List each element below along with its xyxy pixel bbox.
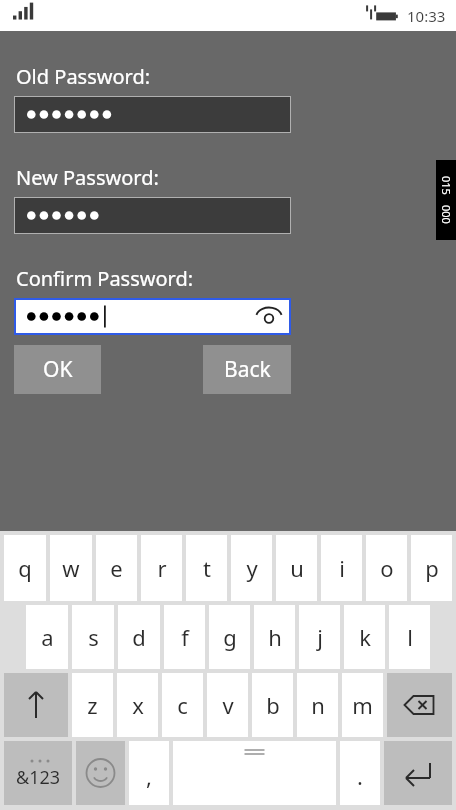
button[interactable]: w: [50, 535, 92, 601]
button[interactable]: u: [276, 535, 317, 601]
staticText: p: [425, 553, 439, 583]
button[interactable]: n: [297, 673, 338, 737]
button[interactable]: OK: [14, 345, 101, 394]
staticText: u: [290, 553, 304, 583]
staticText: z: [87, 690, 98, 720]
staticText: y: [246, 553, 258, 583]
button[interactable]: [14, 197, 291, 234]
staticText: k: [359, 622, 371, 652]
staticText: .: [357, 761, 363, 791]
staticText: 015: [439, 176, 454, 195]
staticText: h: [268, 622, 282, 652]
button[interactable]: j: [299, 605, 340, 669]
button[interactable]: h: [254, 605, 295, 669]
button[interactable]: Emoji: [76, 741, 125, 805]
button[interactable]: Shift: [4, 673, 68, 737]
button[interactable]: t: [186, 535, 227, 601]
staticText: g: [223, 622, 237, 652]
button[interactable]: .: [340, 741, 380, 805]
staticText: a: [41, 622, 54, 652]
staticText: t: [203, 553, 211, 583]
button[interactable]: l: [389, 605, 430, 669]
staticText: Old Password:: [16, 63, 151, 90]
button[interactable]: Space: [173, 741, 336, 805]
button[interactable]: i: [321, 535, 362, 601]
staticText: e: [110, 553, 123, 583]
button[interactable]: e: [96, 535, 137, 601]
button[interactable]: &123: [4, 741, 72, 805]
button[interactable]: Side tab 015 000: [436, 160, 456, 240]
staticText: c: [177, 690, 188, 720]
staticText: Confirm Password:: [16, 265, 194, 292]
staticText: OK: [43, 355, 73, 384]
staticText: r: [157, 553, 167, 583]
button[interactable]: m: [342, 673, 383, 737]
staticText: l: [407, 622, 413, 652]
staticText: w: [62, 553, 80, 583]
button[interactable]: b: [252, 673, 293, 737]
button[interactable]: r: [141, 535, 182, 601]
button[interactable]: a: [26, 605, 68, 669]
button[interactable]: c: [162, 673, 203, 737]
button[interactable]: x: [117, 673, 158, 737]
staticText: &123: [16, 765, 61, 790]
staticText: q: [18, 553, 32, 583]
button[interactable]: g: [209, 605, 250, 669]
staticText: m: [352, 690, 373, 720]
staticText: x: [132, 690, 144, 720]
button[interactable]: y: [231, 535, 272, 601]
staticText: j: [317, 622, 323, 652]
button[interactable]: [14, 96, 291, 133]
button[interactable]: ,: [129, 741, 169, 805]
button[interactable]: d: [118, 605, 160, 669]
staticText: n: [311, 690, 325, 720]
staticText: New Password:: [16, 164, 159, 191]
staticText: 10:33: [407, 6, 446, 26]
staticText: Back: [224, 355, 271, 384]
button[interactable]: Back: [203, 345, 291, 394]
button[interactable]: v: [207, 673, 248, 737]
button[interactable]: [14, 298, 291, 335]
staticText: v: [222, 690, 234, 720]
staticText: ,: [146, 761, 152, 791]
staticText: d: [132, 622, 146, 652]
button[interactable]: q: [4, 535, 46, 601]
staticText: b: [266, 690, 280, 720]
button[interactable]: Backspace: [387, 673, 452, 737]
button[interactable]: f: [164, 605, 205, 669]
button[interactable]: Enter: [384, 741, 452, 805]
staticText: s: [88, 622, 99, 652]
staticText: o: [380, 553, 394, 583]
button[interactable]: k: [344, 605, 385, 669]
button[interactable]: o: [366, 535, 407, 601]
staticText: i: [339, 553, 345, 583]
staticText: 000: [439, 205, 454, 224]
staticText: f: [181, 622, 189, 652]
button[interactable]: z: [72, 673, 113, 737]
button[interactable]: s: [72, 605, 114, 669]
button[interactable]: p: [411, 535, 452, 601]
